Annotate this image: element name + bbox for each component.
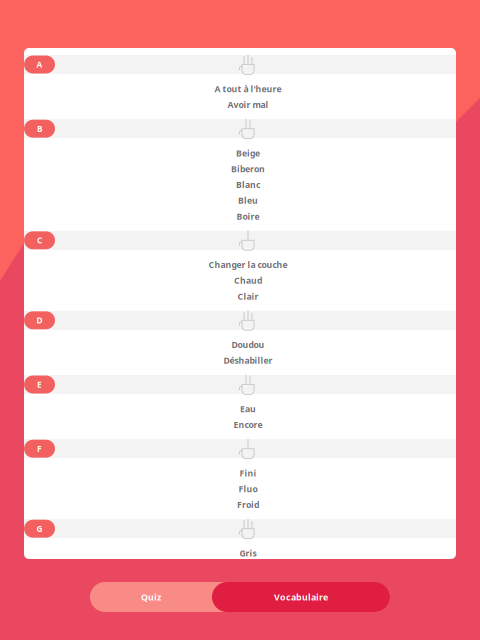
staticText: A tout à l'heure [214,83,281,95]
staticText: Blanc [236,179,260,191]
staticText: Changer la couche [208,259,287,271]
staticText: C [37,235,42,246]
staticText: G [36,523,42,534]
button[interactable]: Eau [24,401,456,417]
button[interactable]: Blanc [24,177,456,193]
button[interactable]: Clair [24,288,456,304]
button[interactable]: Quiz [90,582,212,612]
button[interactable]: Encore [24,417,456,433]
staticText: Gris [239,547,256,559]
staticText: Fluo [238,483,257,495]
staticText: Vocabulaire [274,591,328,603]
staticText: Clair [237,290,258,302]
button[interactable]: Beige [24,145,456,161]
staticText: Encore [233,419,262,431]
staticText: F [37,443,42,454]
button[interactable]: Avoir mal [24,97,456,113]
button[interactable]: Changer la couche [24,257,456,273]
button[interactable]: Déshabiller [24,353,456,368]
staticText: Beige [236,147,260,159]
staticText: Bleu [238,195,258,206]
staticText: Boire [236,210,259,222]
staticText: Fini [239,467,256,479]
staticText: Déshabiller [223,355,272,366]
staticText: E [37,379,42,390]
button[interactable]: Bleu [24,193,456,208]
button[interactable]: Doudou [24,337,456,353]
button[interactable]: Biberon [24,161,456,177]
button[interactable]: Fini [24,465,456,481]
staticText: Froid [237,499,259,511]
button[interactable]: Vocabulaire [212,582,390,612]
staticText: Quiz [141,591,161,603]
staticText: Doudou [231,339,264,351]
button[interactable]: Fluo [24,481,456,497]
staticText: Biberon [231,163,265,175]
staticText: Avoir mal [227,99,268,111]
staticText: A [36,59,42,70]
staticText: D [36,315,42,326]
button[interactable]: Boire [24,208,456,224]
button[interactable]: A tout à l'heure [24,81,456,97]
staticText: Eau [240,403,256,415]
staticText: B [37,123,42,134]
button[interactable]: Gris [24,545,456,561]
button[interactable]: Froid [24,497,456,513]
staticText: Chaud [234,275,262,286]
button[interactable]: Chaud [24,273,456,288]
